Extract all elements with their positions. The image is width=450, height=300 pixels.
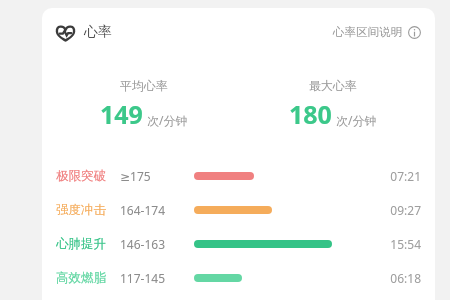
staticText: 心率 xyxy=(84,23,112,41)
staticText: 极限突破 xyxy=(56,168,112,184)
staticText: 最大心率 xyxy=(309,78,357,93)
button[interactable]: 心肺提升 xyxy=(42,227,435,261)
other: Heart rate xyxy=(56,23,75,42)
button[interactable]: 高效燃脂 xyxy=(42,261,435,295)
button[interactable]: 强度冲击 xyxy=(42,193,435,227)
staticText: 149 xyxy=(100,97,143,131)
staticText: 平均心率 xyxy=(120,78,168,93)
staticText: 117-145 xyxy=(120,270,178,286)
staticText: ≥175 xyxy=(120,168,178,184)
staticText: 15:54 xyxy=(385,236,421,252)
staticText: 164-174 xyxy=(120,202,178,218)
staticText: 次/分钟 xyxy=(147,112,188,128)
button[interactable]: 心率区间说明 xyxy=(331,21,423,43)
staticText: 06:18 xyxy=(385,270,421,286)
staticText: 心率区间说明 xyxy=(333,25,402,39)
staticText: 146-163 xyxy=(120,236,178,252)
button[interactable]: 极限突破 xyxy=(42,159,435,193)
staticText: 180 xyxy=(289,97,332,131)
staticText: 心肺提升 xyxy=(56,236,112,252)
other: Heart rate zone info xyxy=(408,26,421,39)
staticText: 高效燃脂 xyxy=(56,270,112,286)
staticText: 强度冲击 xyxy=(56,202,112,218)
staticText: 09:27 xyxy=(385,202,421,218)
staticText: 次/分钟 xyxy=(336,112,377,128)
staticText: 07:21 xyxy=(385,168,421,184)
